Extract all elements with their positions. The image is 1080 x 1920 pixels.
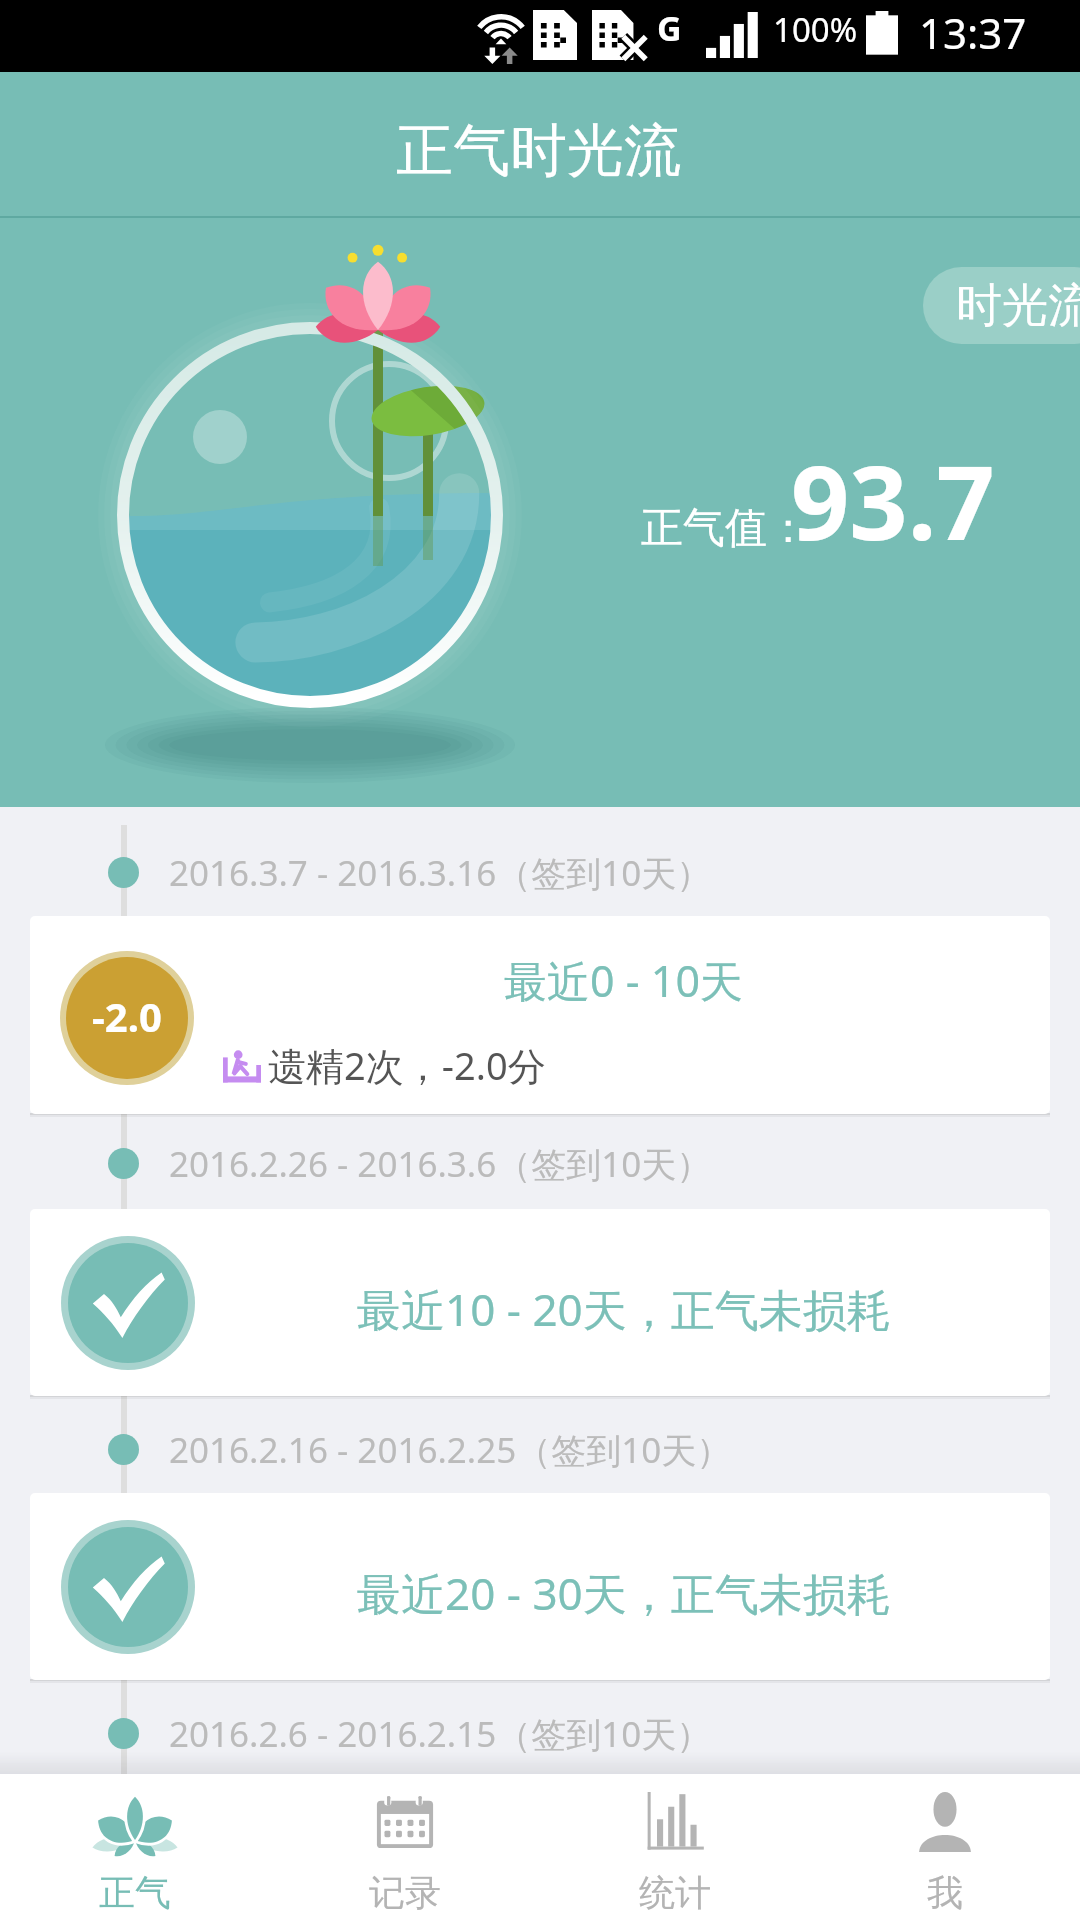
staticText: 2016.2.26 - 2016.3.6（签到10天） (169, 1140, 712, 1188)
staticText: 正气 (99, 1870, 171, 1915)
staticText: 2016.2.6 - 2016.2.15（签到10天） (169, 1710, 712, 1758)
staticText: 13:37 (919, 4, 1027, 61)
button[interactable]: 记录 (270, 1774, 540, 1920)
button[interactable]: 最近20 - 30天，正气未损耗 (30, 1493, 1050, 1680)
staticText: 2016.3.7 - 2016.3.16（签到10天） (169, 849, 712, 897)
button[interactable]: 统计 (540, 1774, 810, 1920)
staticText: 最近10 - 20天，正气未损耗 (357, 1279, 891, 1339)
staticText: 记录 (369, 1870, 441, 1915)
button[interactable]: 时光流 (923, 267, 1080, 344)
button[interactable]: 我 (810, 1774, 1080, 1920)
staticText: 93.7 (791, 431, 995, 570)
staticText: -2.0 (92, 989, 162, 1043)
staticText: 正气时光流 (396, 115, 681, 187)
staticText: 遗精2次，-2.0分 (268, 1039, 546, 1091)
button[interactable]: -2.0 (30, 916, 1050, 1114)
staticText: 100% (773, 7, 858, 52)
staticText: 时光流 (956, 277, 1080, 335)
staticText: 统计 (639, 1870, 711, 1915)
staticText: 正气值： (641, 502, 809, 555)
staticText: 2016.2.16 - 2016.2.25（签到10天） (169, 1426, 732, 1474)
staticText: G (657, 5, 682, 51)
staticText: 最近20 - 30天，正气未损耗 (357, 1563, 891, 1623)
button[interactable]: 正气 (0, 1774, 270, 1920)
staticText: 我 (927, 1870, 963, 1915)
staticText: 最近0 - 10天 (504, 951, 743, 1010)
button[interactable]: 最近10 - 20天，正气未损耗 (30, 1209, 1050, 1396)
